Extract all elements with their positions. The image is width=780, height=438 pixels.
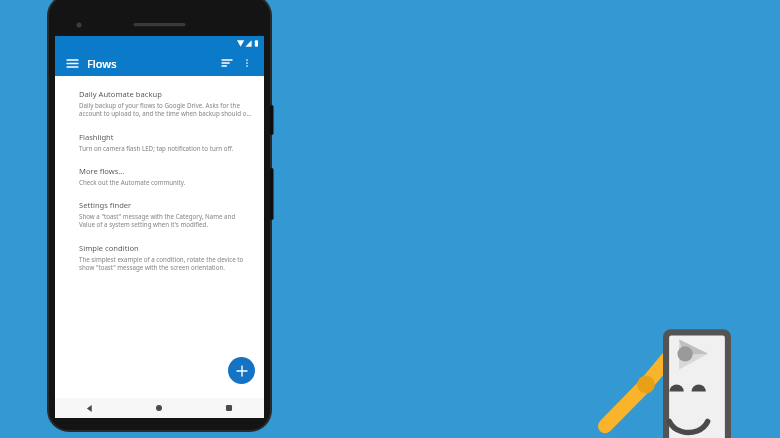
staticText: Flows	[87, 56, 117, 71]
staticText: Daily Automate backup	[79, 89, 162, 99]
button[interactable]: Add flow	[228, 357, 255, 384]
staticText: Check out the Automate community.	[79, 178, 186, 186]
staticText: More flows…	[79, 166, 125, 176]
staticText: Turn on camera flash LED; tap notificati…	[79, 144, 234, 152]
staticText: Simple condition	[79, 243, 139, 253]
staticText: The simplest example of a condition, rot…	[79, 255, 252, 272]
button[interactable]: Back	[55, 398, 124, 418]
button[interactable]: Flashlight	[55, 125, 264, 159]
staticText: Show a "toast" message with the Category…	[79, 212, 252, 229]
staticText: Daily backup of your flows to Google Dri…	[79, 101, 252, 118]
button[interactable]: Simple condition	[55, 236, 264, 279]
button[interactable]: More flows…	[55, 159, 264, 193]
button[interactable]: Open navigation drawer	[62, 53, 82, 73]
button[interactable]: Daily Automate backup	[55, 82, 264, 125]
button[interactable]: Settings finder	[55, 193, 264, 236]
button[interactable]: More options	[237, 53, 257, 73]
button[interactable]: Home	[124, 398, 194, 418]
button[interactable]: Sort	[217, 53, 237, 73]
staticText: Settings finder	[79, 200, 132, 210]
button[interactable]: Recents	[194, 398, 264, 418]
staticText: Flashlight	[79, 132, 114, 142]
